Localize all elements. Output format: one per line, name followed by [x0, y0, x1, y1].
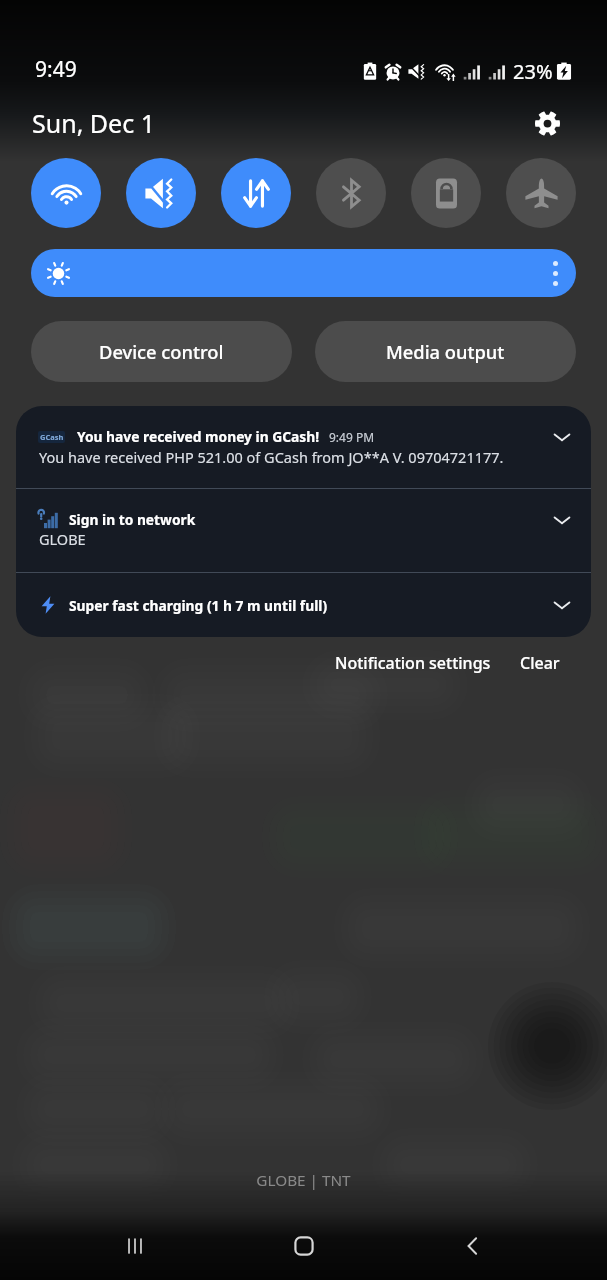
button[interactable]: Sign in to network	[16, 489, 591, 572]
button[interactable]: Back	[388, 1212, 557, 1280]
staticText: 9:49 PM	[329, 429, 375, 445]
staticText: GLOBE | TNT	[0, 1170, 607, 1191]
button[interactable]: Expand notification	[547, 422, 577, 452]
staticText: Sign in to network	[69, 510, 196, 529]
staticText: 23%	[513, 58, 553, 85]
button[interactable]: Notification settings	[327, 646, 499, 680]
button[interactable]: Airplane mode	[506, 158, 576, 228]
button[interactable]: Super fast charging (1 h 7 m until full)	[16, 573, 591, 637]
button[interactable]: Bluetooth	[316, 158, 386, 228]
staticText: GCash	[40, 432, 64, 442]
staticText: You have received money in GCash!	[77, 427, 320, 446]
staticText: GLOBE	[39, 529, 86, 549]
button[interactable]: Expand notification	[547, 505, 577, 535]
staticText: Super fast charging (1 h 7 m until full)	[69, 596, 328, 615]
button[interactable]: Mobile data	[221, 158, 291, 228]
button[interactable]: Expand notification	[547, 590, 577, 620]
button[interactable]: Clear	[512, 646, 568, 680]
staticText: 9:49	[35, 55, 77, 84]
button[interactable]: Media output	[315, 321, 576, 382]
button[interactable]: Recents	[50, 1212, 219, 1280]
button[interactable]: Sound off	[126, 158, 196, 228]
staticText: Sun, Dec 1	[32, 106, 155, 140]
button[interactable]: Lock	[411, 158, 481, 228]
staticText: Media output	[386, 339, 505, 364]
staticText: Notification settings	[335, 652, 491, 674]
staticText: You have received PHP 521.00 of GCash fr…	[39, 447, 504, 467]
button[interactable]: Settings	[529, 105, 565, 141]
button[interactable]: Home	[219, 1212, 388, 1280]
staticText: Device control	[99, 339, 224, 364]
button[interactable]: Device control	[31, 321, 292, 382]
button[interactable]: GCash	[16, 406, 591, 488]
staticText: Clear	[520, 652, 560, 674]
button[interactable]: Brightness	[31, 249, 576, 297]
button[interactable]: Wi-Fi	[31, 158, 101, 228]
